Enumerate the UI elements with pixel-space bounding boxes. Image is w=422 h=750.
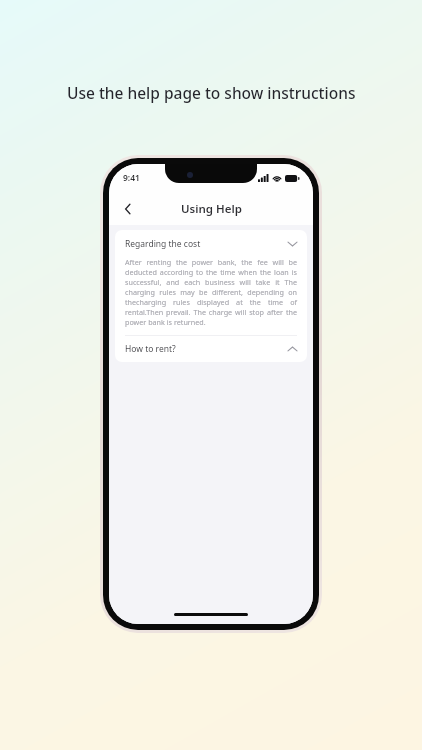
staticText: Using Help (181, 201, 242, 217)
staticText: After renting the power bank, the fee wi… (125, 257, 297, 327)
staticText: Regarding the cost (125, 238, 201, 250)
staticText: How to rent? (125, 343, 176, 355)
staticText: 9:41 (123, 172, 140, 184)
button[interactable]: Regarding the cost (115, 230, 307, 257)
button[interactable]: How to rent? (115, 336, 307, 362)
button[interactable]: Back (115, 196, 141, 222)
staticText: Use the help page to show instructions (67, 82, 356, 103)
